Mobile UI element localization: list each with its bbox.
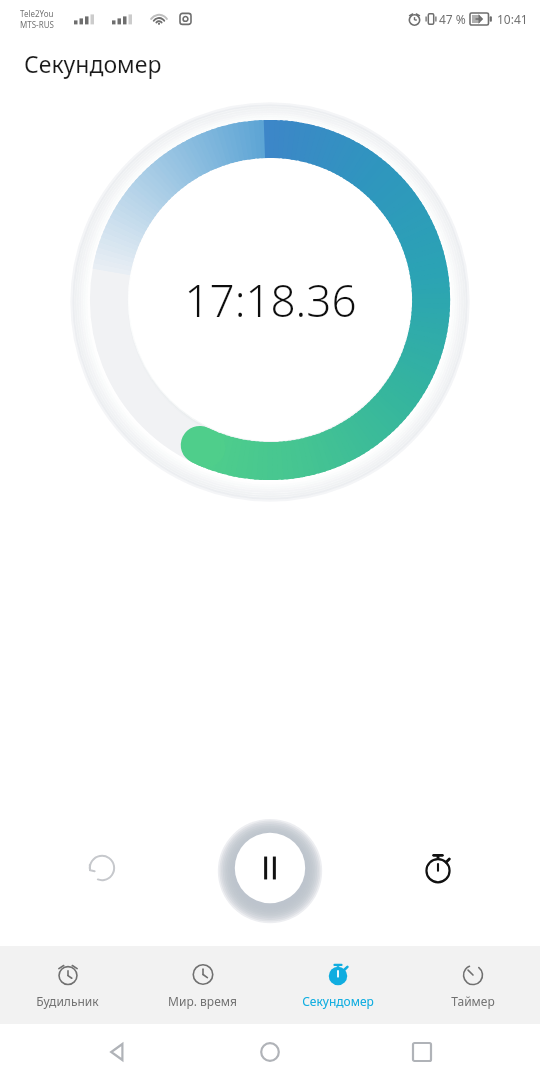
staticText: Секундомер <box>302 993 374 1009</box>
button[interactable]: Назад <box>96 1030 140 1074</box>
button[interactable]: Таймер <box>405 946 540 1024</box>
button[interactable]: Пауза <box>235 833 305 903</box>
staticText: MTS-RUS <box>20 19 54 30</box>
button[interactable]: Круг <box>414 844 462 892</box>
staticText: 47 % <box>439 11 466 27</box>
staticText: 17:18.36 <box>184 270 357 330</box>
staticText: Секундомер <box>24 48 162 79</box>
button[interactable]: Будильник <box>0 946 135 1024</box>
staticText: Будильник <box>36 993 99 1009</box>
button[interactable]: Главный экран <box>248 1030 292 1074</box>
button[interactable]: Сбросить <box>78 844 126 892</box>
button[interactable]: Секундомер <box>270 946 405 1024</box>
staticText: 10:41 <box>497 11 528 27</box>
staticText: Tele2You <box>20 8 54 19</box>
button[interactable]: Недавние приложения <box>400 1030 444 1074</box>
button[interactable]: Мир. время <box>135 946 270 1024</box>
staticText: Мир. время <box>168 993 237 1009</box>
staticText: Таймер <box>451 993 495 1009</box>
